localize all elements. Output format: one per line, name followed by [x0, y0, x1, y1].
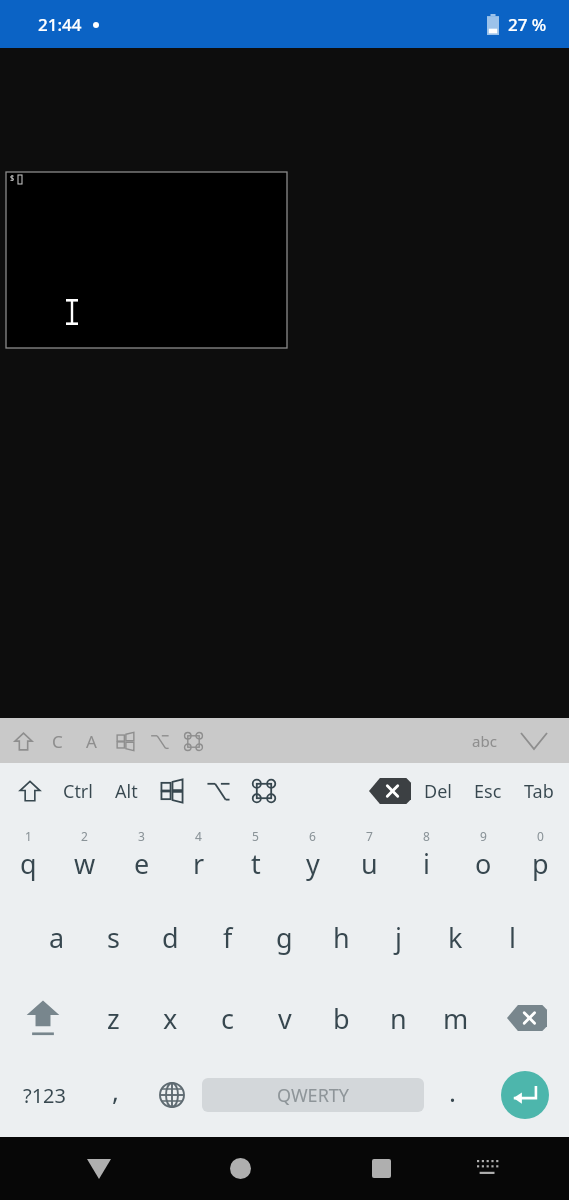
button[interactable]: Modifier key [176, 724, 210, 758]
staticText: w [74, 845, 96, 882]
button[interactable]: n [370, 977, 427, 1059]
button[interactable]: $ [6, 172, 287, 348]
staticText: Ctrl [63, 779, 93, 804]
button[interactable]: Tab [513, 768, 565, 814]
button[interactable]: d [142, 897, 199, 977]
staticText: q [20, 845, 37, 882]
button[interactable]: 9 [455, 819, 512, 897]
staticText: k [448, 919, 463, 956]
button[interactable]: C [40, 724, 74, 758]
button[interactable]: c [199, 977, 256, 1059]
staticText: i [423, 845, 430, 882]
staticText: c [221, 1000, 234, 1037]
button[interactable]: Enter [481, 1059, 569, 1131]
staticText: h [333, 919, 350, 956]
staticText: r [193, 845, 205, 882]
button[interactable]: 8 [398, 819, 455, 897]
staticText: f [223, 919, 233, 956]
button[interactable]: 7 [341, 819, 398, 897]
button[interactable]: k [427, 897, 484, 977]
button[interactable]: 1 [0, 819, 56, 897]
button[interactable]: 5 [227, 819, 284, 897]
button[interactable]: Command [241, 768, 287, 814]
staticText: j [395, 919, 402, 956]
staticText: 21:44 [38, 13, 82, 36]
button[interactable]: Esc [463, 768, 513, 814]
button[interactable]: Switch keyboard [442, 1137, 536, 1200]
staticText: l [509, 919, 516, 956]
button[interactable]: Option [195, 768, 241, 814]
button[interactable]: a [28, 897, 85, 977]
staticText: a [49, 919, 65, 956]
staticText: g [276, 919, 293, 956]
button[interactable]: Modifier key [6, 724, 40, 758]
button[interactable]: Modifier key [142, 724, 176, 758]
staticText: m [443, 1000, 469, 1037]
button[interactable]: A [74, 724, 108, 758]
button[interactable]: Home [193, 1137, 287, 1200]
button[interactable]: s [85, 897, 142, 977]
button[interactable]: 6 [284, 819, 341, 897]
staticText: z [107, 1000, 120, 1037]
button[interactable]: 4 [170, 819, 227, 897]
button[interactable]: g [256, 897, 313, 977]
button[interactable]: Back [52, 1137, 146, 1200]
button[interactable]: , [88, 1059, 142, 1131]
button[interactable]: v [256, 977, 313, 1059]
staticText: 1 [25, 828, 32, 844]
staticText: Esc [474, 779, 502, 804]
button[interactable]: . [424, 1059, 481, 1131]
button[interactable]: Ctrl [52, 768, 104, 814]
staticText: 3 [138, 828, 145, 844]
button[interactable]: h [313, 897, 370, 977]
staticText: ?123 [23, 1082, 66, 1109]
staticText: e [134, 845, 150, 882]
button[interactable]: Windows key [149, 768, 195, 814]
staticText: 4 [195, 828, 202, 844]
staticText: 8 [423, 828, 430, 844]
button[interactable]: 3 [113, 819, 170, 897]
staticText: abc [472, 731, 497, 751]
staticText: Del [424, 779, 452, 804]
staticText: 6 [309, 828, 316, 844]
staticText: s [107, 919, 120, 956]
staticText: 5 [252, 828, 259, 844]
button[interactable]: Backspace [484, 977, 569, 1059]
button[interactable]: abc [466, 725, 503, 757]
button[interactable]: j [370, 897, 427, 977]
button[interactable]: 2 [56, 819, 113, 897]
staticText: d [162, 919, 179, 956]
button[interactable]: Shift [0, 977, 85, 1059]
staticText: y [306, 845, 320, 882]
button[interactable]: m [427, 977, 484, 1059]
button[interactable]: Modifier key [108, 724, 142, 758]
button[interactable]: l [484, 897, 541, 977]
button[interactable]: f [199, 897, 256, 977]
staticText: 9 [480, 828, 487, 844]
button[interactable]: 0 [512, 819, 569, 897]
staticText: v [278, 1000, 292, 1037]
button[interactable]: Alt [104, 768, 149, 814]
button[interactable]: Hide keyboard [517, 724, 551, 758]
staticText: QWERTY [277, 1083, 350, 1108]
staticText: A [86, 730, 97, 753]
button[interactable]: Recent apps [334, 1137, 428, 1200]
button[interactable]: Shift [8, 769, 52, 813]
button[interactable]: Change language [142, 1059, 202, 1131]
button[interactable]: x [142, 977, 199, 1059]
staticText: Alt [115, 779, 138, 804]
staticText: o [475, 845, 492, 882]
button[interactable]: Del [413, 768, 463, 814]
staticText: 7 [366, 828, 373, 844]
staticText: 2 [81, 828, 88, 844]
staticText: b [333, 1000, 350, 1037]
button[interactable]: ?123 [0, 1059, 88, 1131]
button[interactable]: z [85, 977, 142, 1059]
button[interactable]: QWERTY [202, 1059, 424, 1131]
staticText: u [361, 845, 378, 882]
staticText: x [163, 1000, 178, 1037]
staticText: . [449, 1074, 456, 1109]
button[interactable]: Backspace [367, 776, 413, 806]
button[interactable]: b [313, 977, 370, 1059]
staticText: Tab [524, 779, 554, 804]
